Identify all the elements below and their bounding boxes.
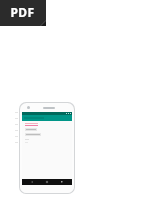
button[interactable]: Back [27,179,37,185]
button[interactable]: Home [42,179,52,185]
staticText: PDF [10,4,35,20]
button[interactable]: PDF document [0,0,46,26]
button[interactable]: Recent apps [57,179,67,185]
button[interactable]: Button [25,133,41,136]
button[interactable] [22,115,72,121]
button[interactable]: Button [25,128,37,131]
